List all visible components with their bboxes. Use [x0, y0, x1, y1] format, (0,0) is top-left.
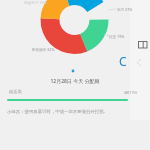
staticText: 社交 19%: [109, 34, 125, 39]
staticText: 小提示：使用屏幕计时，中途一定不要做分外打扰。: [7, 109, 108, 115]
button[interactable]: Split screen: [138, 41, 148, 49]
button[interactable]: Back: [136, 59, 144, 67]
button[interactable]: 娱乐类: [0, 85, 150, 105]
staticText: 学习 37%: [117, 7, 133, 12]
staticText: 娱乐类: [9, 89, 22, 94]
staticText: C: [119, 53, 127, 69]
staticText: 4时17分: [124, 90, 138, 95]
staticText: 影音娱乐 32%: [32, 47, 55, 52]
button[interactable]: 12月28日 今天 分配额: [50, 78, 100, 85]
staticText: 阅读学习 12%: [24, 0, 47, 5]
